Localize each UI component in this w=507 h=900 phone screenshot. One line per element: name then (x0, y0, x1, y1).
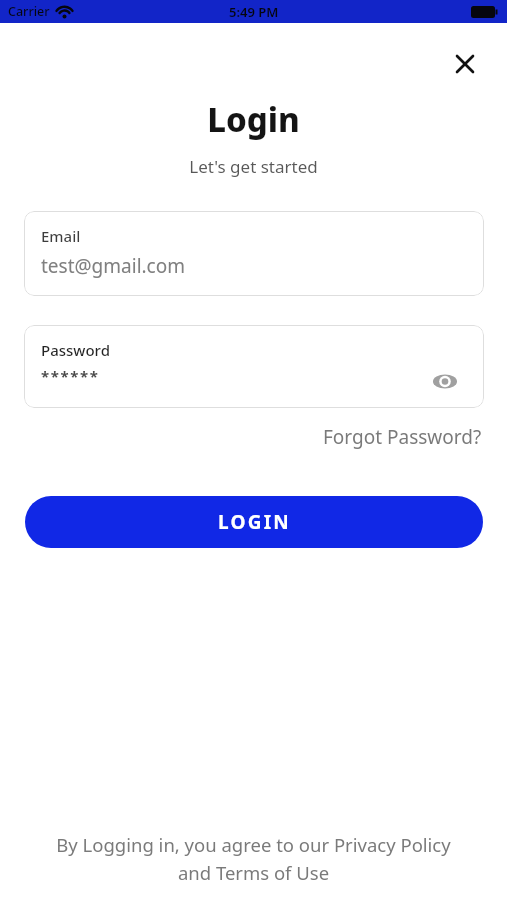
staticText: 5:49 PM (229, 3, 279, 21)
button[interactable]: Password (24, 325, 484, 408)
staticText: test@gmail.com (41, 253, 186, 279)
staticText: and Terms of Use (0, 860, 507, 885)
button[interactable]: Email (24, 211, 484, 296)
staticText: Carrier (8, 3, 50, 20)
staticText: Password (41, 340, 110, 360)
button[interactable] (448, 47, 482, 81)
staticText: Let's get started (0, 155, 507, 178)
button[interactable]: Forgot Password? (323, 424, 482, 450)
button[interactable]: LOGIN (25, 496, 483, 548)
staticText: LOGIN (218, 509, 291, 535)
staticText: ****** (41, 366, 100, 386)
staticText: By Logging in, you agree to our Privacy … (0, 832, 507, 857)
staticText: Email (41, 226, 81, 246)
staticText: Forgot Password? (323, 424, 482, 450)
staticText: Login (0, 97, 507, 142)
